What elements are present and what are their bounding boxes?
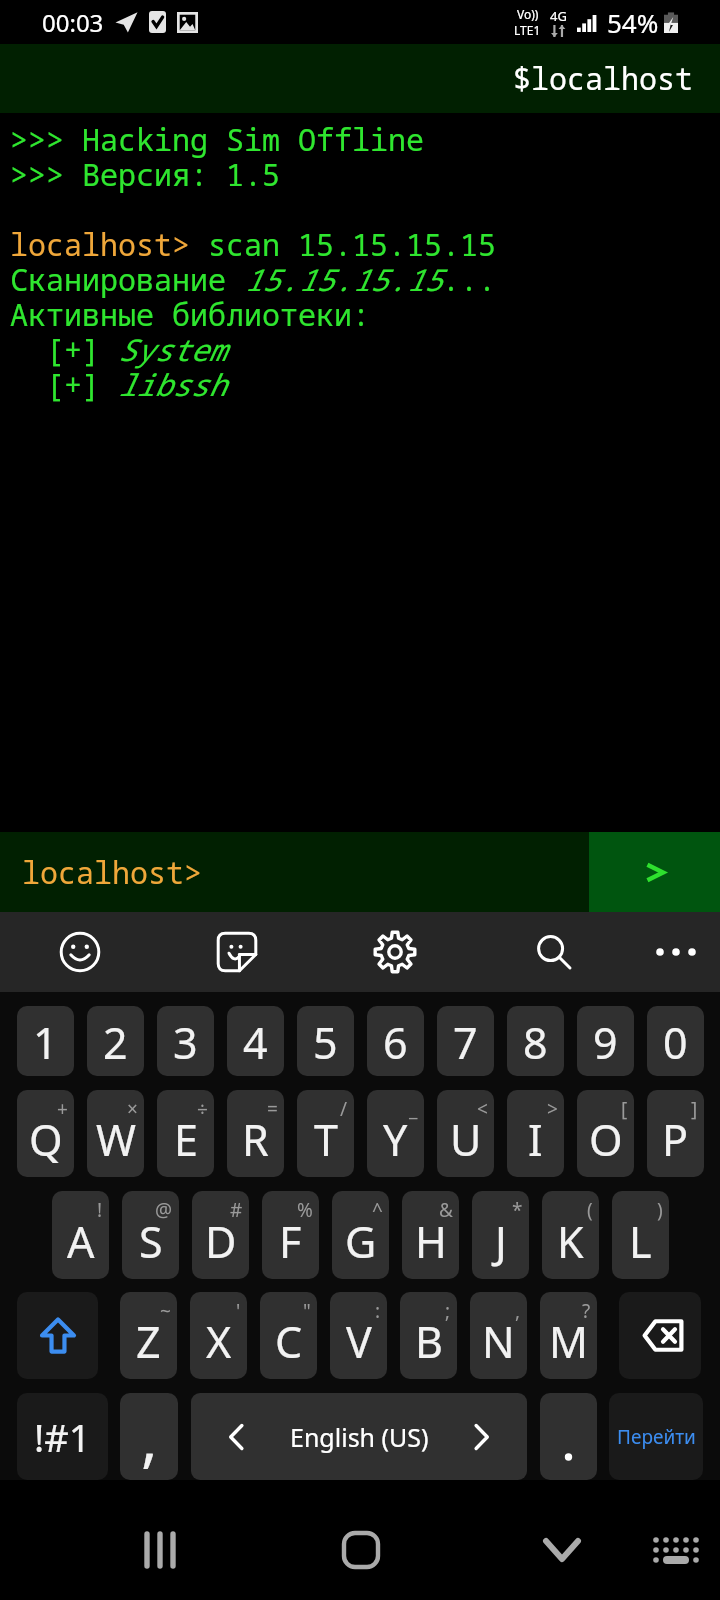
button[interactable]: 2 [87,1006,144,1076]
button[interactable]: 0 [647,1006,704,1076]
button[interactable]: ] [647,1090,704,1177]
staticText: U [450,1110,482,1169]
button[interactable]: Hide keyboard [512,1480,612,1600]
button[interactable]: English (US) [191,1393,527,1480]
staticText: D [205,1212,237,1271]
staticText: LTE1 [514,22,541,38]
staticText: & [439,1197,453,1223]
staticText: × [127,1096,138,1122]
staticText: 7 [453,1013,478,1072]
staticText: G [345,1212,377,1271]
button[interactable]: # [192,1191,249,1279]
button[interactable]: Search [514,912,594,992]
staticText: ? [582,1298,591,1324]
button[interactable]: More options [636,912,716,992]
button[interactable]: / [297,1090,354,1177]
button[interactable]: _ [367,1090,424,1177]
button[interactable]: 1 [17,1006,74,1076]
button[interactable]: Emoji [40,912,120,992]
button[interactable]: 8 [507,1006,564,1076]
button[interactable]: ^ [332,1191,389,1279]
staticText: K [557,1212,584,1271]
staticText: 3 [173,1013,198,1072]
staticText: ! [97,1197,103,1223]
staticText: + [57,1096,68,1122]
staticText: F [279,1212,302,1271]
button[interactable]: Change keyboard [626,1480,720,1600]
button[interactable]: 5 [297,1006,354,1076]
staticText: !#1 [34,1411,91,1463]
button[interactable]: Backspace [619,1292,701,1379]
staticText: 54% [607,5,659,40]
button[interactable]: = [227,1090,284,1177]
staticText: ' [236,1298,241,1324]
button[interactable]: ? [540,1292,597,1379]
button[interactable]: % [262,1191,319,1279]
button[interactable]: 9 [577,1006,634,1076]
staticText: Q [29,1110,63,1169]
button[interactable]: , [470,1292,527,1379]
button[interactable]: × [87,1090,144,1177]
staticText: 6 [383,1013,408,1072]
button[interactable]: Period [540,1393,597,1480]
staticText: ( [587,1197,593,1223]
staticText: " [303,1298,311,1324]
staticText: 8 [523,1013,548,1072]
staticText: : [375,1298,381,1324]
button[interactable]: Shift [17,1292,98,1379]
staticText: < [477,1096,488,1122]
button[interactable]: 4 [227,1006,284,1076]
staticText: H [415,1212,447,1271]
button[interactable]: ' [190,1292,247,1379]
staticText: # [230,1197,243,1223]
staticText: V [346,1312,372,1371]
button[interactable]: Stickers [197,912,277,992]
staticText: >>> Hacking Sim Offline >>> Версия: 1.5 … [10,119,720,405]
button[interactable]: [ [577,1090,634,1177]
staticText: $localhost [513,58,693,99]
button[interactable]: @ [122,1191,179,1279]
button[interactable]: 7 [437,1006,494,1076]
staticText: 5 [313,1013,338,1072]
button[interactable]: ; [400,1292,457,1379]
button[interactable]: !#1 [17,1393,108,1480]
staticText: ^ [372,1197,383,1223]
staticText: ~ [160,1298,171,1324]
staticText: 00:03 [42,6,104,39]
button[interactable]: " [260,1292,317,1379]
button[interactable]: ~ [120,1292,177,1379]
button[interactable] [589,832,720,912]
staticText: P [662,1110,689,1169]
button[interactable]: ! [52,1191,109,1279]
staticText: ] [691,1096,698,1122]
button[interactable]: ( [542,1191,599,1279]
button[interactable]: > [507,1090,564,1177]
staticText: O [589,1110,623,1169]
button[interactable]: ) [612,1191,669,1279]
staticText: ÷ [197,1096,208,1122]
staticText: R [242,1110,269,1169]
staticText: L [629,1212,652,1271]
staticText: 4G [550,7,567,25]
button[interactable]: Recent apps [110,1480,210,1600]
staticText: _ [409,1096,418,1122]
staticText: E [174,1110,198,1169]
button[interactable]: localhost> [0,832,589,912]
button[interactable]: & [402,1191,459,1279]
button[interactable]: 6 [367,1006,424,1076]
button[interactable]: Settings [355,912,435,992]
button[interactable]: < [437,1090,494,1177]
button[interactable]: * [472,1191,529,1279]
button[interactable]: Home [311,1480,411,1600]
button[interactable]: , [120,1393,178,1480]
button[interactable]: : [330,1292,387,1379]
button[interactable]: + [17,1090,74,1177]
staticText: N [482,1312,515,1371]
staticText: S [139,1212,163,1271]
button[interactable]: Перейти [609,1393,703,1480]
button[interactable]: ÷ [157,1090,214,1177]
staticText: I [528,1110,543,1169]
staticText: T [314,1110,338,1169]
staticText: ; [445,1298,451,1324]
button[interactable]: 3 [157,1006,214,1076]
